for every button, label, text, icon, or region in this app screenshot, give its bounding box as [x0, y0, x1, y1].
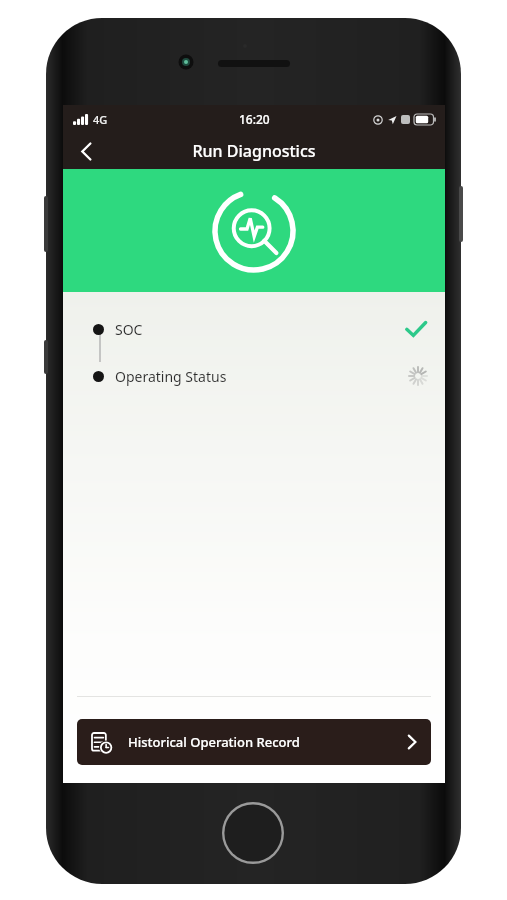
staticText: Run Diagnostics [192, 140, 316, 162]
staticText: 16:20 [239, 111, 270, 127]
button[interactable]: Back [63, 133, 109, 169]
staticText: Historical Operation Record [128, 733, 300, 751]
button[interactable]: Historical Operation Record [77, 719, 431, 765]
button[interactable]: SOC [63, 316, 445, 342]
staticText: Operating Status [115, 367, 227, 386]
button[interactable]: Operating Status [63, 363, 445, 389]
staticText: SOC [115, 320, 143, 339]
staticText: 4G [93, 112, 108, 127]
